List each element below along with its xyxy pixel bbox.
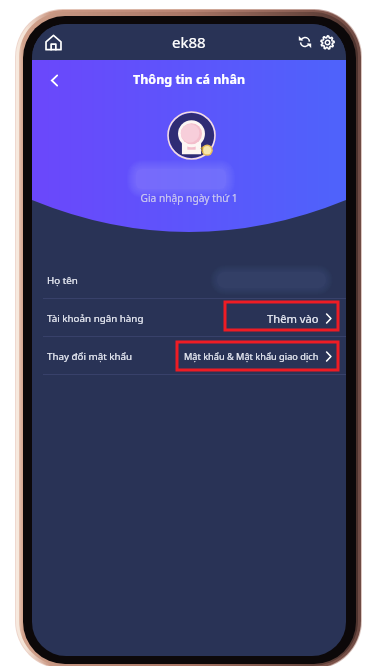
staticText: 1 bbox=[200, 144, 205, 154]
staticText: Thay đổi mật khẩu bbox=[47, 350, 133, 363]
button[interactable]: Tài khoản ngân hàng bbox=[32, 299, 346, 337]
staticText: ek88 bbox=[172, 32, 206, 52]
staticText: Thông tin cá nhân bbox=[32, 71, 346, 88]
button[interactable]: Back bbox=[40, 66, 68, 94]
button[interactable]: Refresh bbox=[294, 31, 316, 53]
staticText: Thêm vào bbox=[267, 311, 319, 326]
staticText: Tài khoản ngân hàng bbox=[47, 312, 144, 325]
button[interactable]: Home bbox=[38, 27, 68, 57]
staticText: Họ tên bbox=[47, 274, 78, 287]
staticText: Gia nhập ngày thứ 1 bbox=[32, 191, 346, 205]
button[interactable]: Thay đổi mật khẩu bbox=[32, 337, 346, 375]
staticText: Mật khẩu & Mật khẩu giao dịch bbox=[184, 350, 319, 363]
button[interactable]: Họ tên bbox=[32, 261, 346, 299]
button[interactable]: Settings bbox=[316, 31, 338, 53]
